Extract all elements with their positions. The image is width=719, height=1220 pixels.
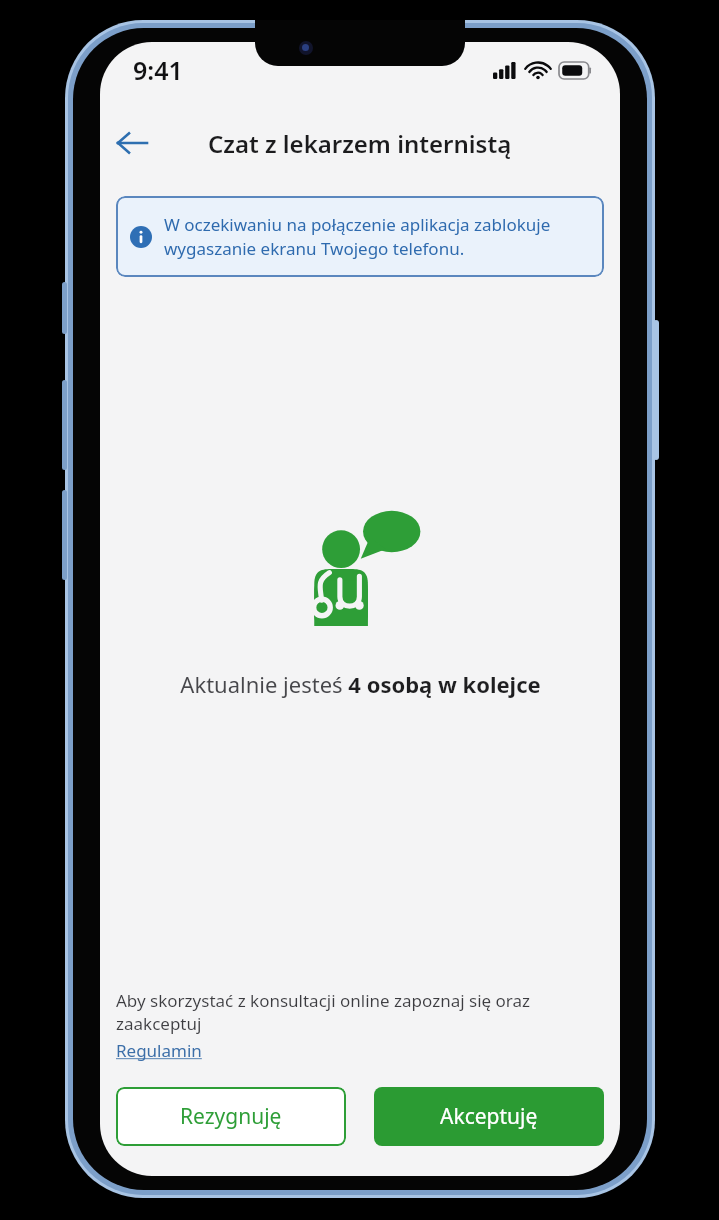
staticText: Czat z lekarzem internistą	[208, 127, 512, 160]
button[interactable]: Rezygnuję	[116, 1087, 346, 1146]
staticText: W oczekiwaniu na połączenie aplikacja za…	[164, 213, 588, 260]
staticText: 9:41	[133, 53, 183, 87]
button[interactable]: W oczekiwaniu na połączenie aplikacja za…	[116, 196, 604, 277]
staticText: Akceptuję	[440, 1102, 538, 1131]
button[interactable]: Akceptuję	[374, 1087, 604, 1146]
staticText: Aktualnie jesteś 4 osobą w kolejce	[180, 669, 541, 699]
staticText: Rezygnuję	[180, 1102, 282, 1131]
button[interactable]: Wstecz	[108, 120, 156, 166]
staticText: Regulamin	[116, 1039, 202, 1062]
button[interactable]: Regulamin	[116, 1039, 202, 1062]
staticText: Aby skorzystać z konsultacji online zapo…	[116, 989, 604, 1035]
